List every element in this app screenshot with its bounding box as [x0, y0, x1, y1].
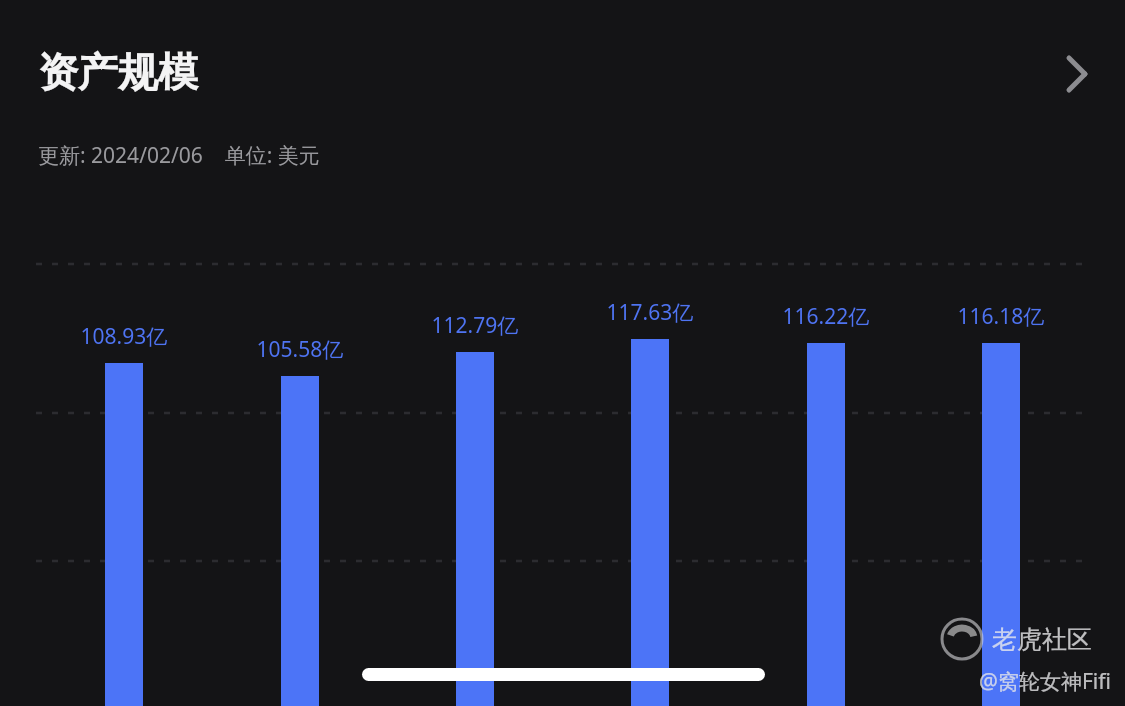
button[interactable]: 资产规模 详情 [0, 25, 1125, 120]
